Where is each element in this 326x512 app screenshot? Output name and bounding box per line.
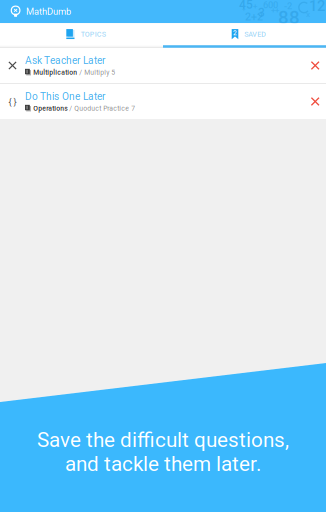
button[interactable]: Ask Teacher Later <box>0 48 326 83</box>
staticText: Ask Teacher Later <box>25 55 105 66</box>
staticText: and tackle them later. <box>65 452 261 476</box>
staticText: ++ <box>271 5 279 15</box>
staticText: x <box>306 9 310 19</box>
staticText: SAVED <box>244 30 266 38</box>
staticText: 12 <box>309 0 325 15</box>
staticText: Multiply 5 <box>84 68 115 76</box>
button[interactable]: { } <box>0 84 326 119</box>
button[interactable]: 2 <box>163 23 326 45</box>
staticText: Quoduct Practice 7 <box>74 104 135 112</box>
staticText: 3 <box>258 5 265 20</box>
staticText: Do This One Later <box>25 91 105 102</box>
staticText: Multiplication <box>33 68 77 76</box>
staticText: MathDumb <box>26 6 71 17</box>
staticText: 45 <box>239 0 253 12</box>
staticText: -2 <box>284 0 292 11</box>
staticText: Operations <box>33 104 67 112</box>
staticText: / <box>67 104 74 112</box>
staticText: { } <box>8 96 16 107</box>
staticText: Save the difficult questions, <box>37 428 289 452</box>
staticText: TOPICS <box>81 30 106 38</box>
staticText: 600 <box>263 0 278 10</box>
staticText: 2 <box>233 29 237 37</box>
staticText: / <box>77 68 84 76</box>
staticText: 2+2 <box>245 10 263 23</box>
staticText: + <box>242 5 246 13</box>
staticText: 88 <box>278 6 300 28</box>
staticText: + <box>253 1 257 11</box>
button[interactable]: TOPICS <box>0 23 163 45</box>
